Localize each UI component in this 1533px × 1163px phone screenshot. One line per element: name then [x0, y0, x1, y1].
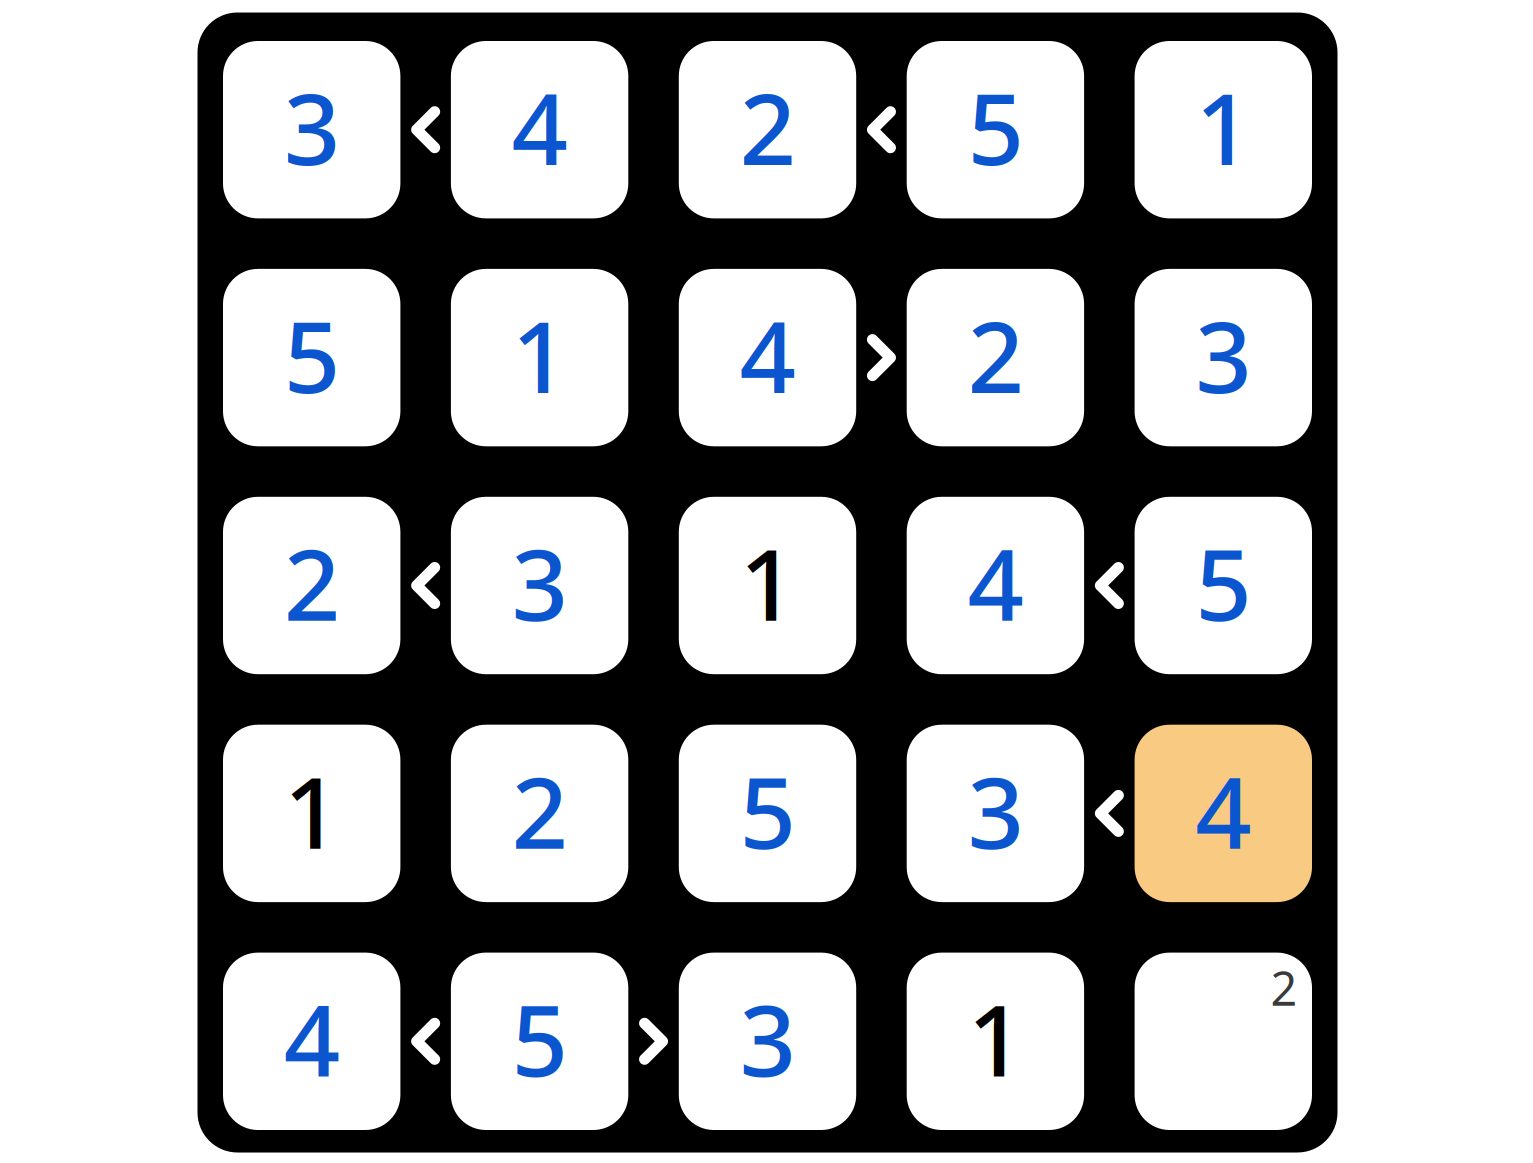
button[interactable]: Row 5, column 5, empty, note 2 — [1135, 953, 1312, 1130]
staticText: 4 — [284, 973, 340, 1104]
button[interactable]: 4 — [223, 953, 400, 1130]
staticText: 5 — [739, 745, 795, 876]
button[interactable]: 3 — [451, 497, 628, 674]
staticText: 5 — [284, 289, 340, 420]
button[interactable]: 1 — [907, 953, 1084, 1130]
staticText: 4 — [512, 61, 568, 192]
staticText: 1 — [967, 973, 1023, 1104]
staticText: 3 — [967, 745, 1023, 876]
button[interactable]: 3 — [679, 953, 856, 1130]
button[interactable]: 4 — [451, 41, 628, 218]
button[interactable]: 2 — [451, 725, 628, 902]
staticText: 1 — [739, 517, 795, 648]
staticText: 5 — [512, 973, 568, 1104]
button[interactable]: 5 — [451, 953, 628, 1130]
staticText: 2 — [739, 61, 795, 192]
button[interactable]: 4 — [679, 269, 856, 446]
button[interactable]: 5 — [223, 269, 400, 446]
staticText: 2 — [512, 745, 568, 876]
button[interactable]: 2 — [223, 497, 400, 674]
staticText: 4 — [1195, 745, 1251, 876]
button[interactable]: 1 — [451, 269, 628, 446]
button[interactable]: 3 — [1135, 269, 1312, 446]
button[interactable]: 5 — [679, 725, 856, 902]
button[interactable]: 2 — [679, 41, 856, 218]
button[interactable]: 2 — [907, 269, 1084, 446]
button[interactable]: 1 — [223, 725, 400, 902]
staticText: 4 — [739, 289, 795, 420]
staticText: 5 — [1195, 517, 1251, 648]
staticText: 2 — [967, 289, 1023, 420]
staticText: 2 — [1270, 957, 1297, 1019]
button[interactable]: 5 — [1135, 497, 1312, 674]
button[interactable]: 5 — [907, 41, 1084, 218]
staticText: 3 — [512, 517, 568, 648]
button[interactable]: 3 — [223, 41, 400, 218]
staticText: 3 — [1195, 289, 1251, 420]
staticText: 1 — [512, 289, 568, 420]
staticText: 1 — [1195, 61, 1251, 192]
button[interactable]: 3 — [907, 725, 1084, 902]
button[interactable]: 1 — [679, 497, 856, 674]
staticText: 3 — [284, 61, 340, 192]
staticText: 2 — [284, 517, 340, 648]
staticText: 4 — [967, 517, 1023, 648]
button[interactable]: 4 — [907, 497, 1084, 674]
button[interactable]: 4 — [1135, 725, 1312, 902]
staticText: 5 — [967, 61, 1023, 192]
button[interactable]: 1 — [1135, 41, 1312, 218]
staticText: 3 — [739, 973, 795, 1104]
staticText: 1 — [284, 745, 340, 876]
